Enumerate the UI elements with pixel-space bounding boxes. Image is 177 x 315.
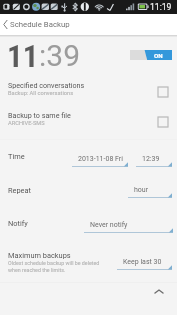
staticText: Backup to same file — [8, 111, 71, 119]
button[interactable]: Specified conversations — [0, 78, 177, 108]
staticText: Schedule Backup — [10, 20, 70, 29]
staticText: hour — [134, 186, 149, 194]
staticText: Keep last 30 — [123, 258, 162, 266]
button[interactable]: hour — [128, 186, 172, 200]
button[interactable]: Schedule Backup — [0, 14, 177, 35]
staticText: 11:19 — [150, 2, 172, 12]
staticText: 2013-11-08 Fri — [78, 155, 123, 163]
staticText: when reached the limits. — [8, 267, 66, 273]
staticText: Backup: All conversations — [8, 90, 74, 97]
staticText: Repeat — [8, 186, 31, 195]
button[interactable]: Never notify — [84, 221, 173, 235]
staticText: ARCHIVE-SMS — [8, 120, 45, 127]
button[interactable]: ON — [130, 50, 172, 60]
staticText: Specified conversations — [8, 81, 85, 89]
staticText: Oldest schedule backup will be deleted — [8, 260, 100, 266]
button[interactable]: 2013-11-08 Fri — [72, 155, 128, 169]
button[interactable]: Backup to same file — [0, 108, 177, 138]
staticText: 12:39 — [142, 155, 160, 163]
button[interactable]: Keep last 30 — [117, 258, 172, 272]
staticText: Time — [8, 152, 25, 161]
button[interactable]: 12:39 — [136, 155, 172, 169]
staticText: :39 — [39, 38, 80, 73]
staticText: Notify — [8, 219, 28, 228]
staticText: 11 — [7, 38, 39, 74]
staticText: Never notify — [90, 221, 128, 229]
staticText: Maximum backups — [8, 251, 71, 260]
button[interactable]: Collapse — [148, 280, 170, 302]
staticText: ON — [154, 52, 163, 59]
